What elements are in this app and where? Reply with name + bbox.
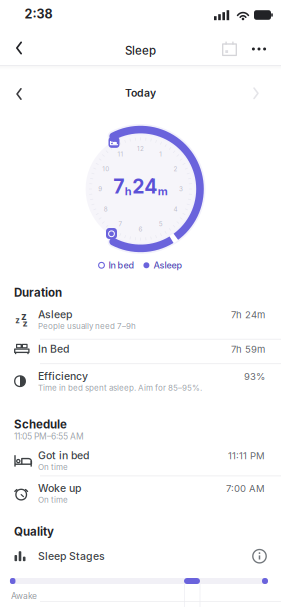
staticText: Asleep (153, 260, 182, 271)
staticText: h (125, 184, 132, 198)
button[interactable]: Sleep Stages (12, 550, 105, 563)
staticText: Got in bed (38, 449, 89, 462)
staticText: Efficiency (38, 370, 88, 382)
staticText: 7h 24m (231, 309, 265, 320)
staticText: Duration (14, 285, 62, 299)
staticText: 4 (173, 205, 177, 213)
staticText: 7 (118, 220, 122, 228)
staticText: 9 (98, 185, 102, 193)
staticText: Sleep Stages (38, 550, 105, 563)
staticText: 8 (104, 205, 108, 213)
button[interactable]: Next day (244, 78, 268, 108)
staticText: 10 (102, 165, 109, 173)
staticText: z (15, 315, 20, 325)
staticText: 11:05 PM–6:55 AM (14, 431, 84, 441)
staticText: Awake (11, 591, 37, 601)
staticText: m (158, 184, 168, 198)
button[interactable]: Back (6, 31, 32, 64)
staticText: Schedule (14, 417, 67, 431)
staticText: 11 (117, 150, 123, 158)
staticText: Today (125, 87, 156, 99)
staticText: z (22, 318, 27, 329)
staticText: Time in bed spent asleep. Aim for 85–95%… (38, 383, 202, 393)
staticText: People usually need 7–9h (38, 321, 136, 331)
staticText: In bed (108, 260, 134, 271)
staticText: z (21, 310, 27, 322)
staticText: On time (38, 462, 68, 472)
button[interactable]: More options (244, 39, 274, 58)
staticText: 7:00 AM (226, 483, 265, 494)
staticText: 24 (132, 175, 157, 198)
staticText: In Bed (38, 343, 69, 355)
staticText: 7h 59m (231, 344, 265, 355)
staticText: 5 (159, 220, 163, 228)
staticText: 6 (139, 225, 143, 233)
staticText: Asleep (38, 308, 72, 321)
staticText: 2:38 (24, 6, 52, 21)
staticText: Sleep (125, 43, 156, 57)
button[interactable]: Previous day (7, 79, 31, 109)
staticText: On time (38, 495, 68, 505)
staticText: 12 (137, 145, 144, 152)
staticText: 1 (159, 150, 162, 158)
staticText: 7 (113, 175, 124, 198)
staticText: 2 (173, 165, 177, 173)
staticText: 93% (244, 371, 265, 382)
button[interactable]: About sleep stages (248, 545, 271, 568)
staticText: Woke up (38, 482, 81, 494)
staticText: Quality (14, 524, 54, 538)
button[interactable]: Calendar (215, 35, 243, 62)
staticText: 11:11 PM (228, 450, 265, 461)
staticText: 3 (179, 185, 183, 193)
